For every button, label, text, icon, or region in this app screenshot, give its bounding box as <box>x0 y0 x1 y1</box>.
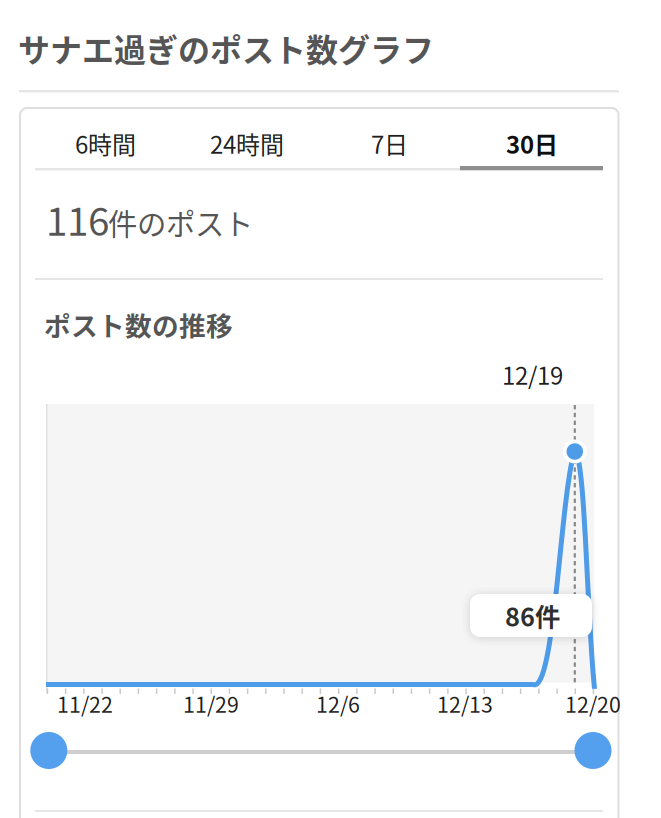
staticText: 12/6 <box>316 688 360 719</box>
button[interactable]: Range end <box>574 732 611 769</box>
staticText: 11/22 <box>57 688 113 719</box>
staticText: 7日 <box>371 126 408 161</box>
staticText: 11/29 <box>183 688 239 719</box>
staticText: 件のポスト <box>108 201 253 243</box>
staticText: 12/20 <box>565 688 621 719</box>
staticText: 6時間 <box>75 126 136 161</box>
button[interactable]: 7日 <box>324 113 467 170</box>
staticText: 116 <box>46 191 109 247</box>
staticText: 12/13 <box>437 688 493 719</box>
staticText: 24時間 <box>210 126 284 161</box>
staticText: サナエ過ぎのポスト数グラフ <box>18 25 434 71</box>
button[interactable]: 24時間 <box>181 113 324 170</box>
staticText: 30日 <box>506 126 558 161</box>
button[interactable]: 30日 <box>460 113 603 170</box>
staticText: ポスト数の推移 <box>44 305 233 344</box>
button[interactable]: 6時間 <box>38 113 181 170</box>
button[interactable]: Range start <box>30 732 67 769</box>
staticText: 12/19 <box>502 357 563 392</box>
staticText: 86件 <box>505 597 560 634</box>
